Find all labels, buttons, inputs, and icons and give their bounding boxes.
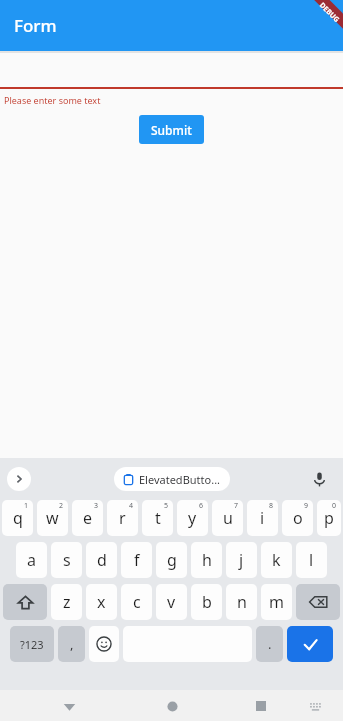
button[interactable]: l [296,542,327,578]
staticText: p [324,507,334,529]
staticText: x [97,591,106,613]
button[interactable]: Switch keyboard [303,694,327,718]
staticText: , [70,635,74,653]
button[interactable]: Voice input [308,468,330,490]
staticText: b [202,591,212,613]
button[interactable]: u [212,500,243,536]
staticText: i [260,507,265,529]
button[interactable]: m [261,584,292,620]
staticText: e [83,507,93,529]
button[interactable]: o [282,500,313,536]
button[interactable]: t [142,500,173,536]
button[interactable]: s [51,542,82,578]
staticText: v [167,591,176,613]
button[interactable]: b [191,584,222,620]
staticText: d [97,549,107,571]
button[interactable]: f [121,542,152,578]
staticText: h [202,549,212,571]
staticText: 4 [129,501,134,511]
staticText: q [13,507,23,529]
button[interactable]: r [107,500,138,536]
staticText: f [134,549,140,571]
button[interactable]: i [247,500,278,536]
staticText: . [268,635,272,653]
button[interactable]: , [58,626,85,662]
button[interactable]: a [16,542,47,578]
staticText: ?123 [20,637,44,652]
button[interactable]: More suggestions [7,467,31,491]
staticText: 9 [304,501,309,511]
staticText: u [223,507,233,529]
staticText: 1 [24,501,29,511]
button[interactable]: Emoji [89,626,119,662]
staticText: 7 [234,501,239,511]
button[interactable]: Back [56,693,82,719]
button[interactable]: Shift [3,584,47,620]
staticText: s [63,549,71,571]
staticText: 0 [332,501,337,511]
staticText: 3 [94,501,99,511]
staticText: k [272,549,281,571]
staticText: 8 [269,501,274,511]
button[interactable]: Recents [248,693,274,719]
staticText: j [239,549,244,571]
staticText: y [188,507,197,529]
button[interactable]: c [121,584,152,620]
button[interactable]: n [226,584,257,620]
staticText: m [269,591,284,613]
staticText: DEBUG [317,1,342,25]
staticText: c [133,591,141,613]
staticText: t [155,507,161,529]
staticText: n [237,591,247,613]
button[interactable]: j [226,542,257,578]
staticText: 6 [199,501,204,511]
button[interactable]: k [261,542,292,578]
button[interactable]: e [72,500,103,536]
staticText: o [293,507,303,529]
button[interactable]: z [51,584,82,620]
button[interactable]: p [317,500,341,536]
button[interactable]: q [2,500,33,536]
staticText: ElevatedButto... [139,472,221,487]
staticText: a [27,549,36,571]
button[interactable]: x [86,584,117,620]
button[interactable]: . [256,626,283,662]
staticText: l [309,549,314,571]
button[interactable]: ElevatedButto... [114,467,230,491]
staticText: Submit [151,122,192,138]
button[interactable]: h [191,542,222,578]
staticText: g [167,549,177,571]
button[interactable]: Submit [139,115,204,144]
button[interactable]: d [86,542,117,578]
button[interactable]: Enter [287,626,333,662]
button[interactable]: w [37,500,68,536]
staticText: Form [14,14,57,37]
button[interactable]: y [177,500,208,536]
staticText: Please enter some text [4,94,101,106]
button[interactable]: g [156,542,187,578]
staticText: r [119,507,126,529]
button[interactable]: Backspace [296,584,340,620]
staticText: 5 [164,501,169,511]
button[interactable]: Home [159,693,185,719]
staticText: 2 [59,501,64,511]
button[interactable]: ?123 [10,626,54,662]
staticText: w [46,507,59,529]
staticText: z [63,591,71,613]
button[interactable]: v [156,584,187,620]
